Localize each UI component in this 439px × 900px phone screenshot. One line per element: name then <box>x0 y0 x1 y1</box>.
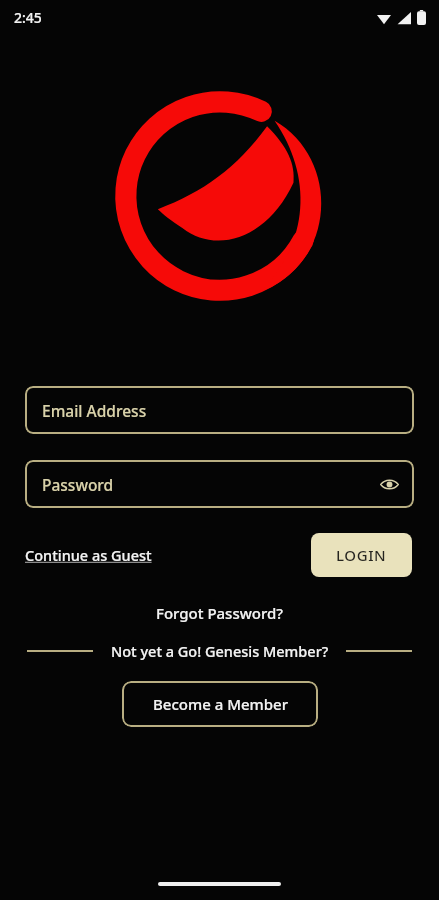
staticText: Password <box>42 474 114 495</box>
button[interactable]: Password <box>25 460 414 508</box>
button[interactable]: Email Address <box>25 386 414 434</box>
staticText: 2:45 <box>14 8 42 27</box>
button[interactable]: Forgot Password? <box>146 599 294 627</box>
staticText: Not yet a Go! Genesis Member? <box>111 641 329 661</box>
staticText: Forgot Password? <box>156 603 284 623</box>
button[interactable]: LOGIN <box>311 533 412 577</box>
staticText: Continue as Guest <box>25 545 152 565</box>
staticText: LOGIN <box>336 545 387 565</box>
staticText: Email Address <box>42 400 147 421</box>
button[interactable]: Continue as Guest <box>25 539 152 571</box>
staticText: Become a Member <box>153 694 288 714</box>
button[interactable]: Become a Member <box>122 681 318 727</box>
button[interactable]: Show password <box>376 471 402 497</box>
